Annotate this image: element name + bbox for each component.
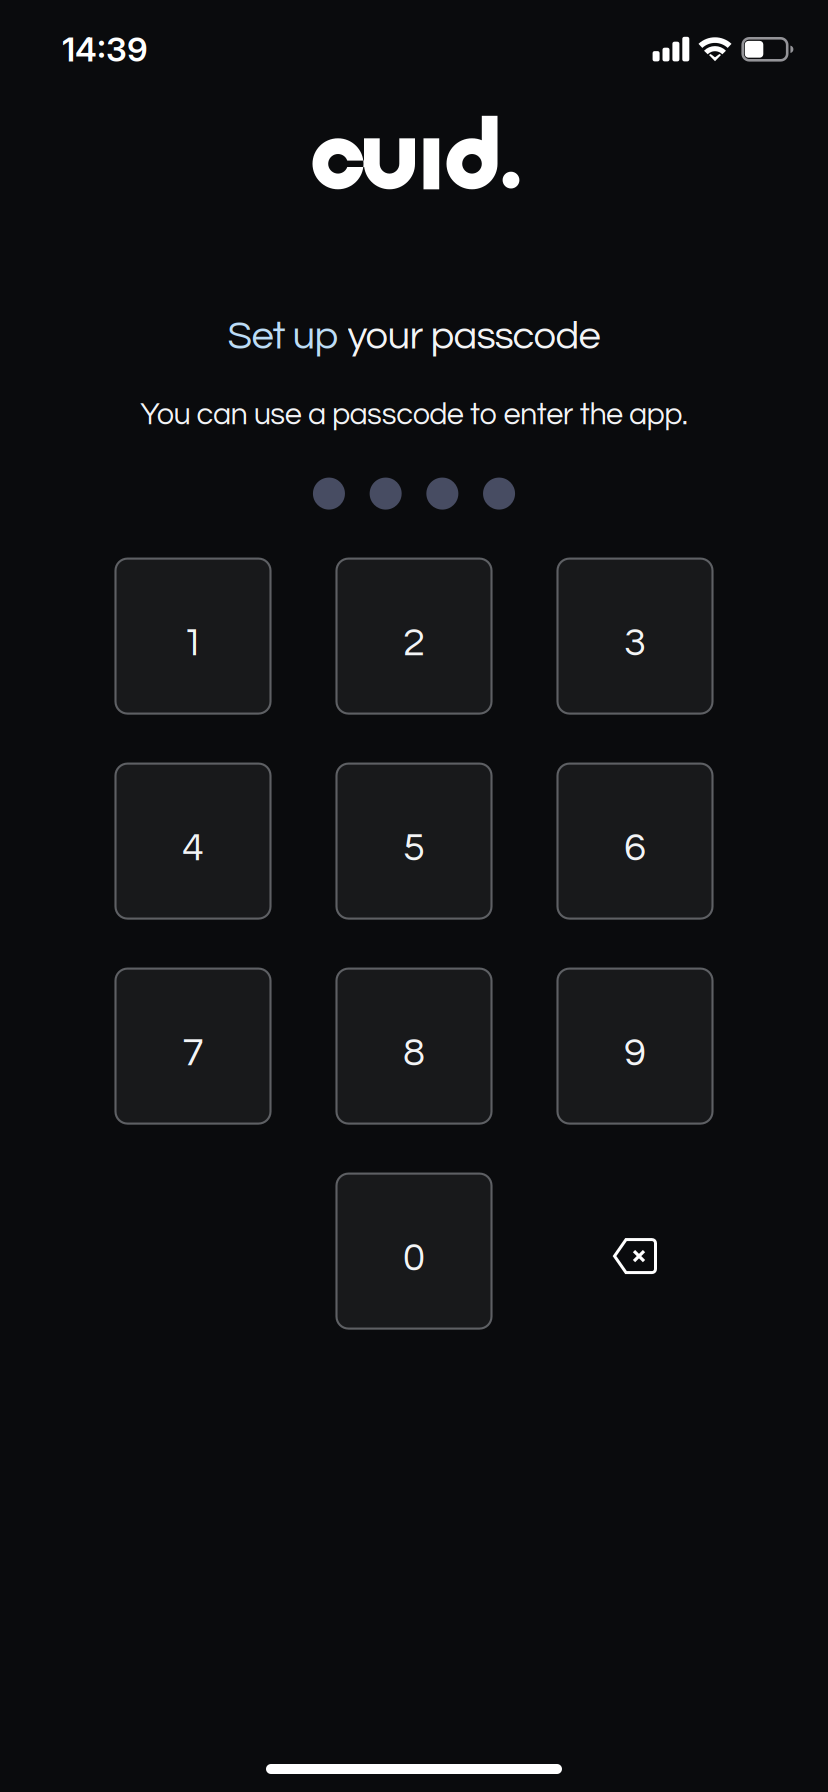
staticText: 3 xyxy=(624,622,646,664)
staticText: 5 xyxy=(403,827,425,869)
staticText: 6 xyxy=(624,827,646,869)
staticText: 7 xyxy=(182,1032,204,1074)
button[interactable]: 7 xyxy=(115,969,270,1124)
staticText: 14:39 xyxy=(62,29,148,69)
staticText: 8 xyxy=(403,1032,425,1074)
button[interactable]: 2 xyxy=(336,559,491,714)
button[interactable]: 6 xyxy=(557,764,712,919)
staticText: 1 xyxy=(182,622,204,664)
staticText: 0 xyxy=(403,1237,425,1279)
button[interactable]: 5 xyxy=(336,764,491,919)
button[interactable]: 4 xyxy=(115,764,270,919)
button[interactable]: 3 xyxy=(557,559,712,714)
button[interactable]: 1 xyxy=(115,559,270,714)
staticText: your passcode xyxy=(347,316,600,357)
button[interactable]: Delete xyxy=(557,1174,712,1329)
button[interactable]: 0 xyxy=(336,1174,491,1329)
staticText: 4 xyxy=(182,827,204,869)
staticText: 2 xyxy=(403,622,425,664)
button[interactable]: 9 xyxy=(557,969,712,1124)
staticText: Set up xyxy=(227,316,347,357)
button[interactable]: 8 xyxy=(336,969,491,1124)
staticText: You can use a passcode to enter the app. xyxy=(140,399,688,431)
staticText: 9 xyxy=(624,1032,646,1074)
